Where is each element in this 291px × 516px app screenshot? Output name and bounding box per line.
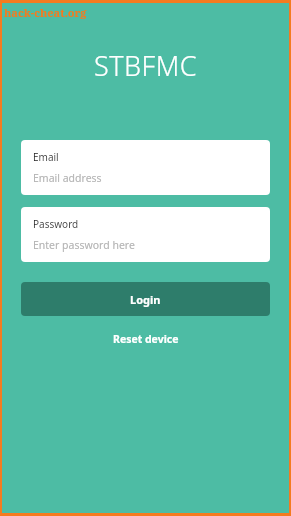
staticText: Email address (33, 171, 258, 185)
staticText: Password (33, 217, 79, 231)
staticText: hack-cheat.org (4, 5, 87, 20)
button[interactable]: Password (21, 207, 270, 262)
staticText: Login (130, 292, 161, 307)
button[interactable]: Login (21, 282, 270, 316)
button[interactable]: Email (21, 140, 270, 195)
staticText: Email (33, 150, 59, 164)
button[interactable]: Reset device (101, 327, 191, 351)
staticText: STBFMC (94, 47, 198, 84)
staticText: Enter password here (33, 238, 258, 252)
staticText: Reset device (113, 332, 179, 346)
